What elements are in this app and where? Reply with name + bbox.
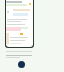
button[interactable] xyxy=(5,0,34,48)
button[interactable]: Profile xyxy=(18,61,25,68)
